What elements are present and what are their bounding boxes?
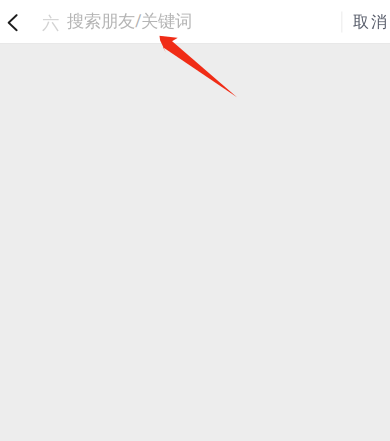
button[interactable]: 取	[353, 0, 390, 43]
button[interactable]: 六	[30, 0, 335, 43]
staticText: 六	[42, 12, 59, 34]
staticText: 搜索朋友/关键词	[67, 9, 192, 32]
button[interactable]: Back	[0, 0, 30, 43]
staticText: 消	[371, 12, 387, 32]
staticText: 取	[353, 12, 369, 32]
